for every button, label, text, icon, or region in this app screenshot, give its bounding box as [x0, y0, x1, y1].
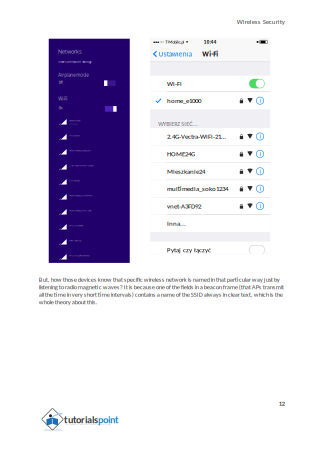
button[interactable]: On [105, 106, 117, 112]
staticText: ▾ [186, 40, 188, 44]
staticText: point [98, 413, 119, 426]
button[interactable]: multimedia_MA4777AAA [59, 194, 129, 209]
staticText: WYBIERZ SIEĆ... [158, 120, 198, 128]
button[interactable]: HOME24G [59, 179, 129, 194]
button[interactable]: Off [104, 80, 116, 86]
button[interactable]: multimedia_soko1234 [59, 149, 129, 164]
staticText: S I M P L Y E A S Y L E A R N I N G [66, 422, 110, 426]
staticText: TP-LINK_9448A [69, 224, 83, 227]
button[interactable]: HOME24G [150, 145, 270, 162]
staticText: multimedia_MA4777AAA [69, 194, 92, 197]
staticText: ••• [153, 39, 159, 45]
staticText: Airplane mode [58, 72, 88, 78]
staticText: vnet-A3FD92 [167, 202, 201, 210]
staticText: Off [59, 81, 63, 84]
staticText: Inna... [167, 219, 186, 228]
staticText: HOME24G [167, 150, 195, 158]
button[interactable]: View Connection Settings [58, 60, 91, 63]
button[interactable]: TP-LINK_9448A [59, 224, 129, 239]
button[interactable]: Wi-Fi [150, 76, 270, 92]
staticText: home_e1000 [167, 96, 201, 105]
button[interactable]: vnet-A3FD92 [150, 198, 270, 215]
button[interactable]: 2.4G-Vectra-WiFi-2772B [59, 164, 129, 179]
staticText: View Connection Settings [58, 60, 91, 63]
staticText: 12 [279, 399, 285, 407]
staticText: Wi-Fi [167, 79, 182, 88]
staticText: HOME24G [69, 179, 80, 182]
staticText: Ustawienia [158, 50, 191, 58]
staticText: multimedia_soko1234 [167, 184, 228, 193]
staticText: Limited [69, 122, 77, 125]
staticText: Networks [58, 47, 82, 55]
button[interactable]: TP-LINK_Sokolowska [59, 254, 129, 269]
staticText: tutorials [64, 413, 98, 426]
button[interactable]: home_e1000 [150, 92, 270, 109]
staticText: 2.4G-Vectra-WiFi-21… [167, 132, 226, 141]
staticText: 2.4G-Vectra-WiFi-2772B [69, 164, 94, 167]
staticText: multimedia_WIFI_308 [69, 209, 91, 212]
staticText: home_e1000 [69, 119, 80, 122]
staticText: Wireless Security [237, 18, 285, 26]
staticText: Pytaj czy łączyć [167, 246, 211, 254]
staticText: Wi-Fi [202, 50, 218, 58]
button[interactable]: home_e1000 [59, 119, 129, 134]
staticText: multimedia_soko1234 [69, 149, 90, 152]
staticText: 10:44 [204, 39, 217, 45]
staticText: TP-LINK_Sokolowska [69, 254, 89, 257]
staticText: ○○ [160, 39, 164, 44]
button[interactable]: multimedia_WIFI_308 [59, 209, 129, 224]
button[interactable]: Inna... [150, 215, 270, 232]
staticText: T-Mobile.pl [165, 39, 184, 45]
button[interactable]: 2.4G-Vectra-WiFi-21… [150, 128, 270, 145]
staticText: HOME24G [69, 134, 80, 137]
button[interactable]: Mieszkanie24 [150, 163, 270, 180]
staticText: vnet-A3FD92 [69, 239, 81, 242]
button[interactable]: HOME24G [59, 134, 129, 149]
button[interactable]: multimedia_soko1234 [150, 180, 270, 197]
button[interactable]: Ustawienia [150, 46, 191, 62]
button[interactable]: Pytaj czy łączyć [150, 241, 270, 258]
staticText: But, how those devices know that specifi… [39, 276, 284, 306]
button[interactable]: vnet-A3FD92 [59, 239, 129, 254]
staticText: Wi-Fi [58, 96, 67, 102]
staticText: Mieszkanie24 [167, 167, 205, 175]
staticText: On [59, 106, 63, 110]
